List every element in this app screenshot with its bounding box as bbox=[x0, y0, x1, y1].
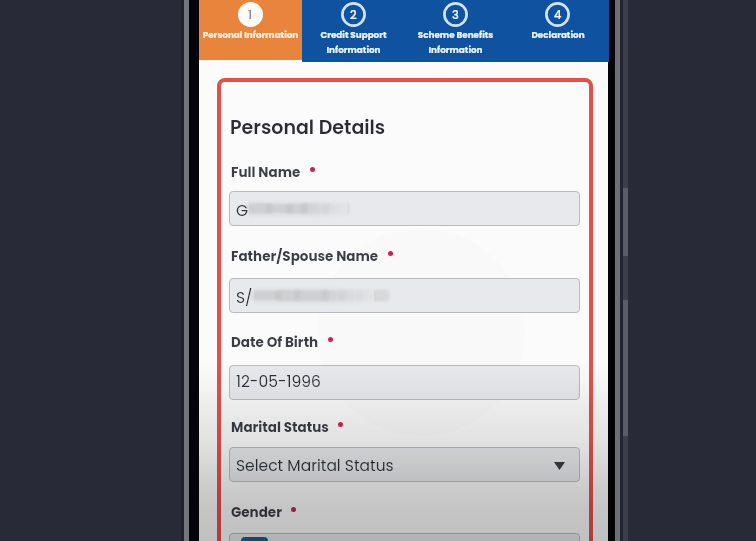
button[interactable]: 12-05-1996 bbox=[229, 365, 580, 400]
staticText: Select Marital Status bbox=[236, 455, 394, 477]
staticText: Gender bbox=[231, 503, 282, 522]
staticText: 1 bbox=[248, 7, 253, 23]
button[interactable]: 1 bbox=[199, 0, 302, 60]
button[interactable]: G bbox=[229, 191, 580, 226]
staticText: 12-05-1996 bbox=[236, 371, 321, 393]
button[interactable]: Select gender bbox=[229, 533, 580, 541]
button[interactable]: Select gender bbox=[241, 537, 268, 541]
button[interactable]: 3 bbox=[404, 0, 507, 62]
staticText: Information bbox=[404, 44, 507, 56]
button[interactable]: 4 bbox=[507, 0, 609, 62]
staticText: Scheme Benefits bbox=[404, 29, 507, 41]
staticText: 2 bbox=[350, 7, 357, 23]
staticText: Marital Status bbox=[231, 418, 329, 437]
staticText: 4 bbox=[554, 7, 562, 23]
staticText: 3 bbox=[452, 7, 459, 23]
staticText: Personal Information bbox=[199, 29, 302, 41]
button[interactable]: S/ bbox=[229, 278, 580, 313]
staticText: Information bbox=[302, 44, 405, 56]
staticText: Date Of Birth bbox=[231, 333, 319, 352]
staticText: Declaration bbox=[507, 29, 609, 41]
button[interactable]: 2 bbox=[302, 0, 405, 62]
other: Open marital status options bbox=[554, 462, 565, 470]
staticText: G bbox=[236, 200, 249, 222]
staticText: Personal Details bbox=[230, 114, 386, 141]
button[interactable]: Select Marital Status bbox=[229, 447, 580, 482]
staticText: Credit Support bbox=[302, 29, 405, 41]
staticText: Full Name bbox=[231, 163, 301, 182]
staticText: S/ bbox=[236, 287, 253, 309]
staticText: Father/Spouse Name bbox=[231, 247, 379, 266]
